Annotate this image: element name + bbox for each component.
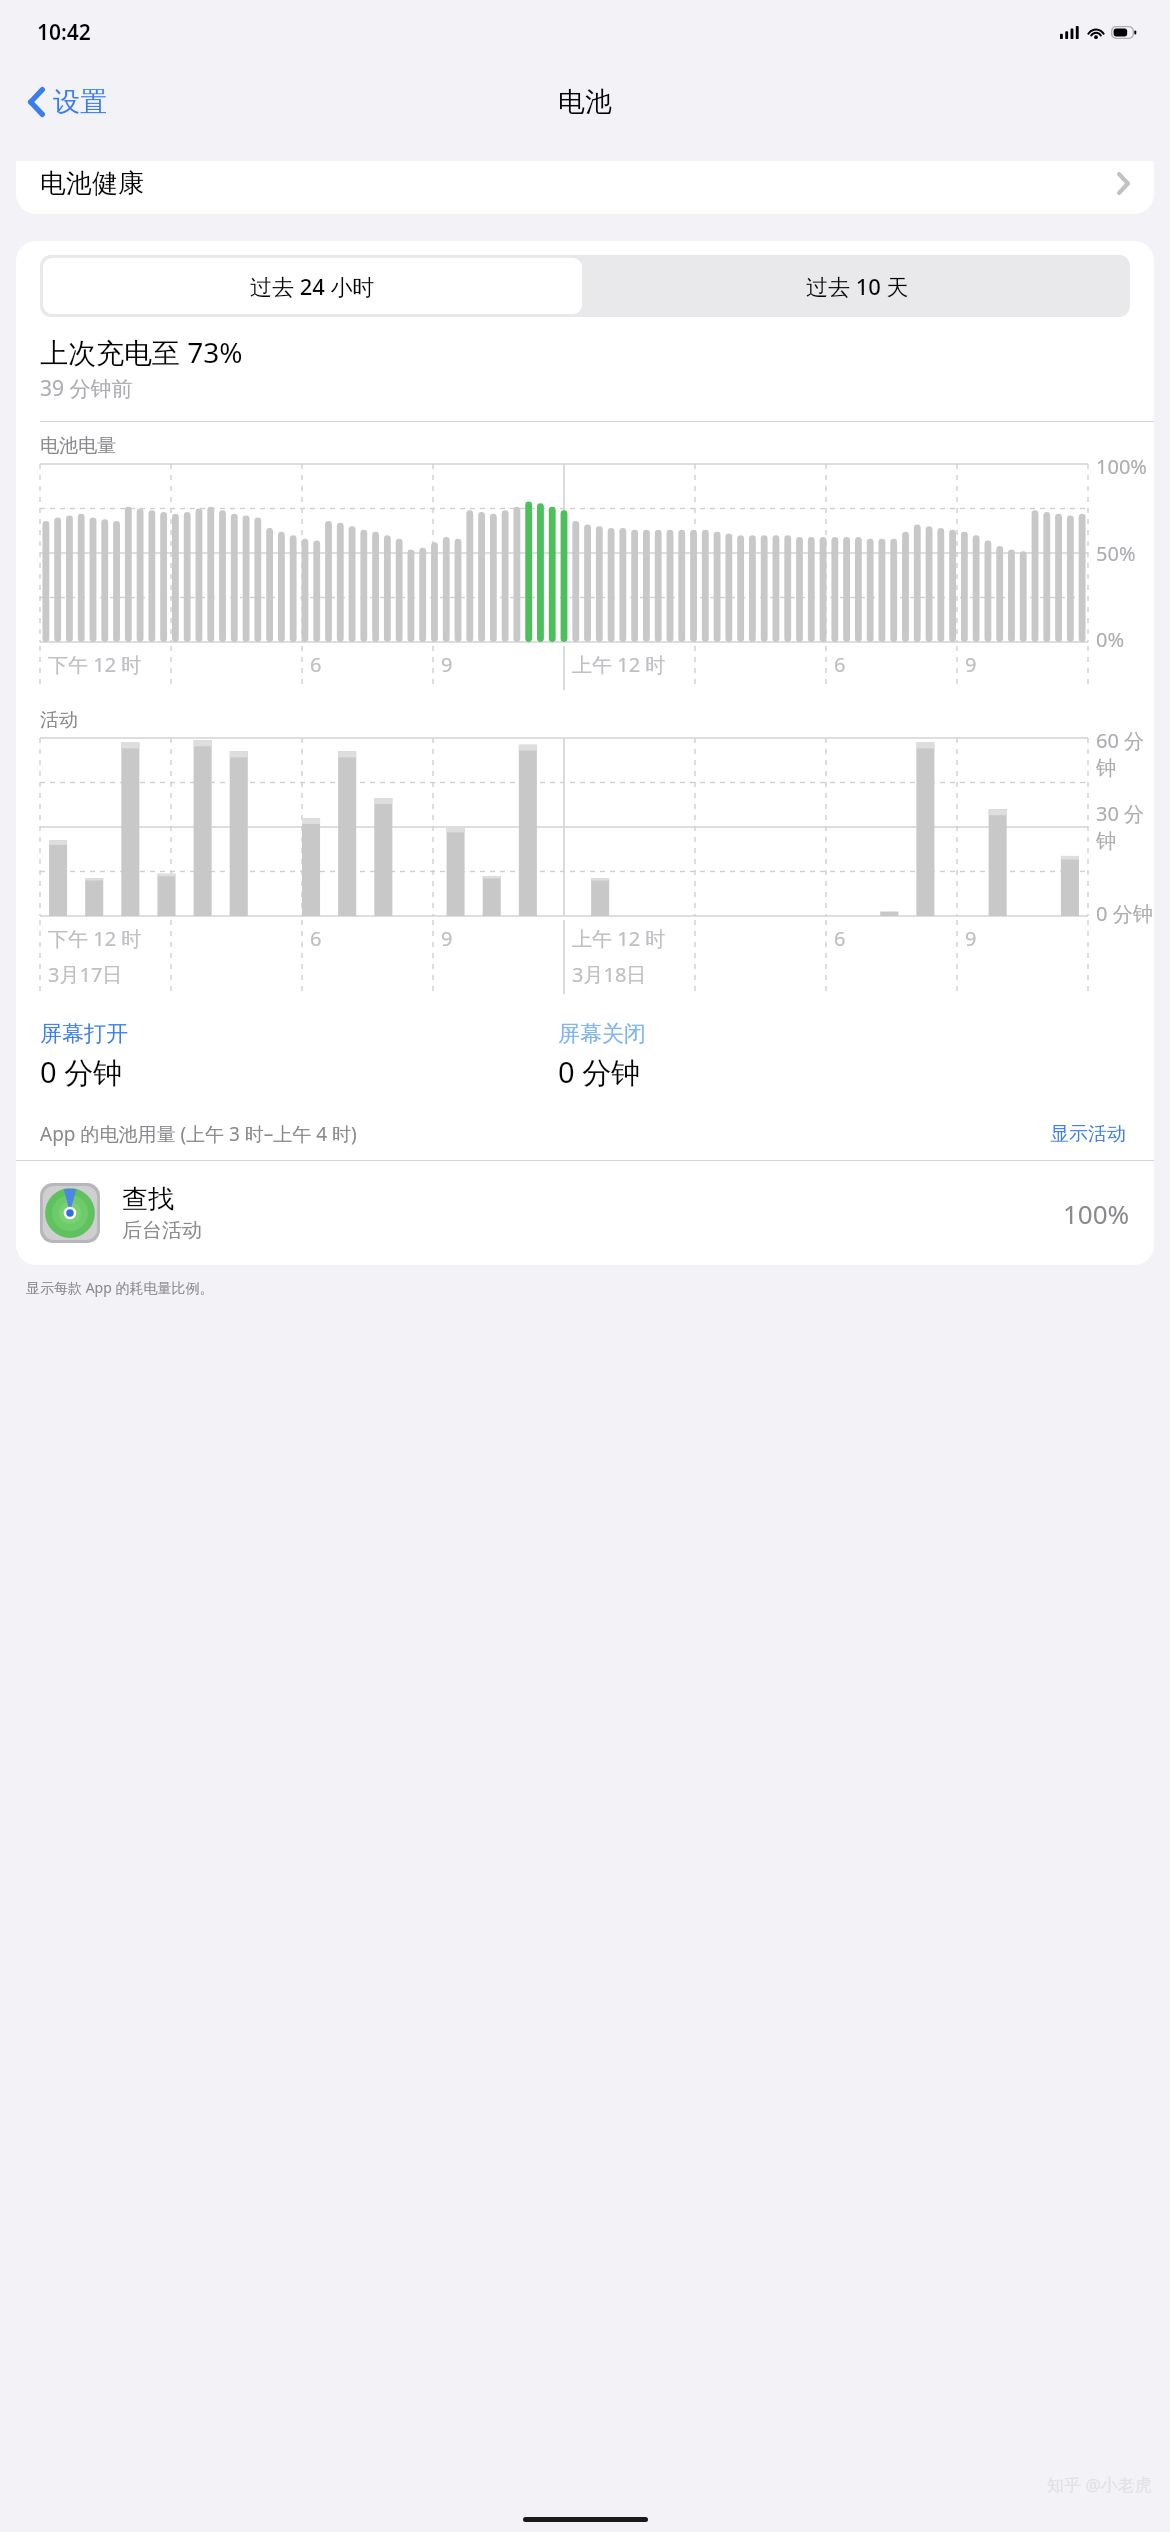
staticText: 10:42	[37, 18, 91, 47]
staticText: 后台活动	[122, 1218, 202, 1243]
staticText: 0 分钟	[40, 1052, 123, 1092]
staticText: 0%	[1096, 626, 1125, 653]
staticText: 屏幕打开	[40, 1020, 128, 1048]
staticText: 下午 12 时	[48, 651, 142, 678]
staticText: 过去 24 小时	[250, 271, 375, 301]
staticText: 知乎 @小老虎	[1047, 2473, 1152, 2496]
staticText: 30 分钟	[1096, 800, 1154, 854]
staticText: 0 分钟	[558, 1052, 641, 1092]
button[interactable]: 查找	[16, 1161, 1154, 1265]
staticText: 显示活动	[1050, 1122, 1126, 1146]
staticText: 电池健康	[40, 167, 144, 200]
staticText: 3月18日	[572, 961, 647, 988]
staticText: 3月17日	[48, 961, 123, 988]
staticText: 9	[441, 925, 453, 952]
staticText: 100%	[1063, 1196, 1130, 1231]
button[interactable]: 过去 24 小时	[43, 258, 582, 314]
staticText: 活动	[40, 708, 78, 732]
staticText: 60 分钟	[1096, 727, 1154, 781]
staticText: 设置	[53, 85, 107, 119]
staticText: App 的电池用量 (上午 3 时–上午 4 时)	[40, 1121, 1046, 1147]
staticText: 9	[965, 651, 977, 678]
staticText: 查找	[122, 1183, 174, 1216]
staticText: 电池电量	[40, 434, 116, 458]
staticText: 上次充电至 73%	[40, 333, 243, 371]
staticText: 9	[441, 651, 453, 678]
staticText: 6	[834, 651, 846, 678]
staticText: 0 分钟	[1096, 900, 1153, 927]
staticText: 39 分钟前	[40, 374, 133, 403]
staticText: 屏幕关闭	[558, 1020, 646, 1048]
staticText: 上午 12 时	[572, 651, 666, 678]
button[interactable]: 电池健康	[16, 161, 1154, 214]
staticText: 过去 10 天	[806, 271, 909, 301]
staticText: 9	[965, 925, 977, 952]
staticText: 6	[834, 925, 846, 952]
staticText: 50%	[1096, 540, 1136, 567]
staticText: 6	[310, 925, 322, 952]
staticText: 电池	[558, 85, 612, 119]
staticText: 下午 12 时	[48, 925, 142, 952]
staticText: 上午 12 时	[572, 925, 666, 952]
staticText: 6	[310, 651, 322, 678]
button[interactable]: 设置	[22, 79, 113, 125]
button[interactable]: 显示活动	[1046, 1118, 1130, 1150]
staticText: 100%	[1096, 453, 1147, 480]
button[interactable]: 过去 10 天	[585, 255, 1130, 317]
staticText: 显示每款 App 的耗电量比例。	[26, 1278, 214, 1297]
